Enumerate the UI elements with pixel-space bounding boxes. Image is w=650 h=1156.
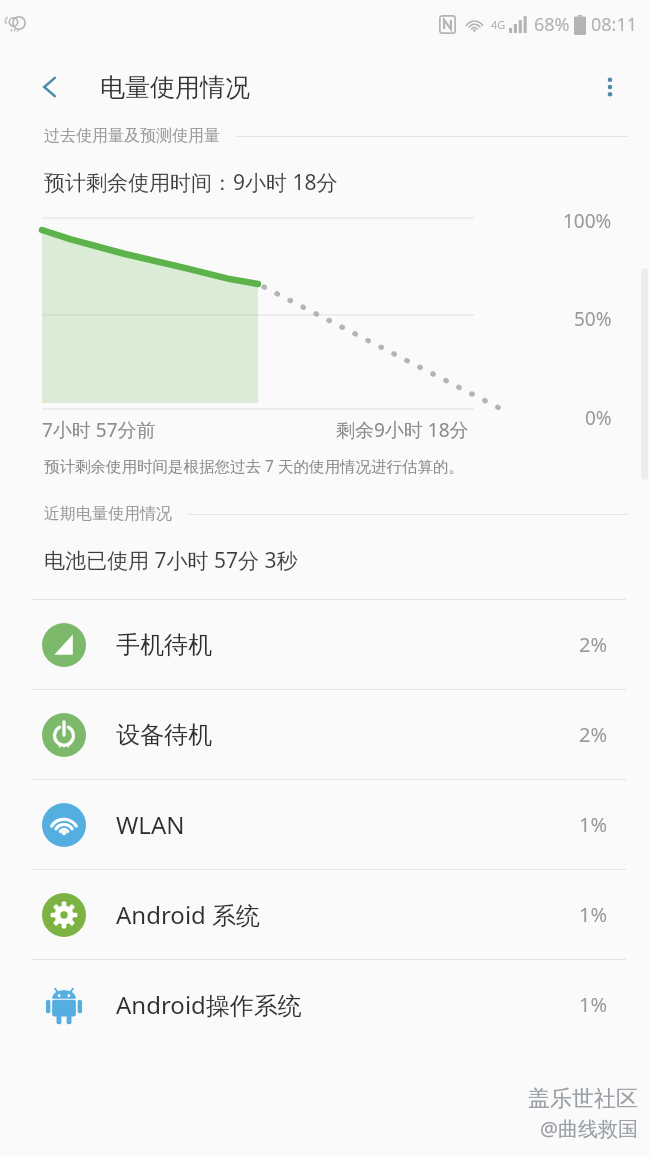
staticText: 近期电量使用情况: [44, 504, 172, 524]
staticText: 68%: [534, 12, 570, 37]
staticText: 预计剩余使用时间：9小时 18分: [44, 168, 338, 197]
staticText: 设备待机: [116, 720, 212, 750]
staticText: 盖乐世社区: [528, 1085, 638, 1113]
staticText: 1%: [579, 991, 608, 1018]
staticText: Android 系统: [116, 898, 261, 931]
staticText: 100%: [563, 208, 612, 234]
staticText: 电量使用情况: [100, 72, 250, 103]
staticText: Android操作系统: [116, 988, 302, 1021]
staticText: 7小时 57分前: [42, 417, 156, 443]
button[interactable]: Android 系统: [0, 870, 650, 959]
staticText: 剩余9小时 18分: [336, 417, 469, 443]
button[interactable]: 手机待机: [0, 600, 650, 689]
staticText: 手机待机: [116, 630, 212, 660]
button[interactable]: Android操作系统: [0, 960, 650, 1049]
button[interactable]: Back: [24, 61, 76, 113]
button[interactable]: 设备待机: [0, 690, 650, 779]
button[interactable]: More options: [584, 61, 636, 113]
staticText: 2%: [579, 721, 608, 748]
staticText: 1%: [579, 811, 608, 838]
staticText: WLAN: [116, 808, 185, 841]
button[interactable]: WLAN: [0, 780, 650, 869]
staticText: 08:11: [591, 12, 638, 37]
staticText: 50%: [574, 306, 612, 332]
staticText: @曲线救国: [540, 1115, 638, 1142]
staticText: 2%: [579, 631, 608, 658]
staticText: 预计剩余使用时间是根据您过去 7 天的使用情况进行估算的。: [44, 455, 464, 476]
staticText: 过去使用量及预测使用量: [44, 126, 220, 146]
staticText: 1%: [579, 901, 608, 928]
staticText: 0%: [585, 405, 612, 431]
staticText: 电池已使用 7小时 57分 3秒: [44, 546, 298, 575]
staticText: 4G: [491, 17, 506, 32]
